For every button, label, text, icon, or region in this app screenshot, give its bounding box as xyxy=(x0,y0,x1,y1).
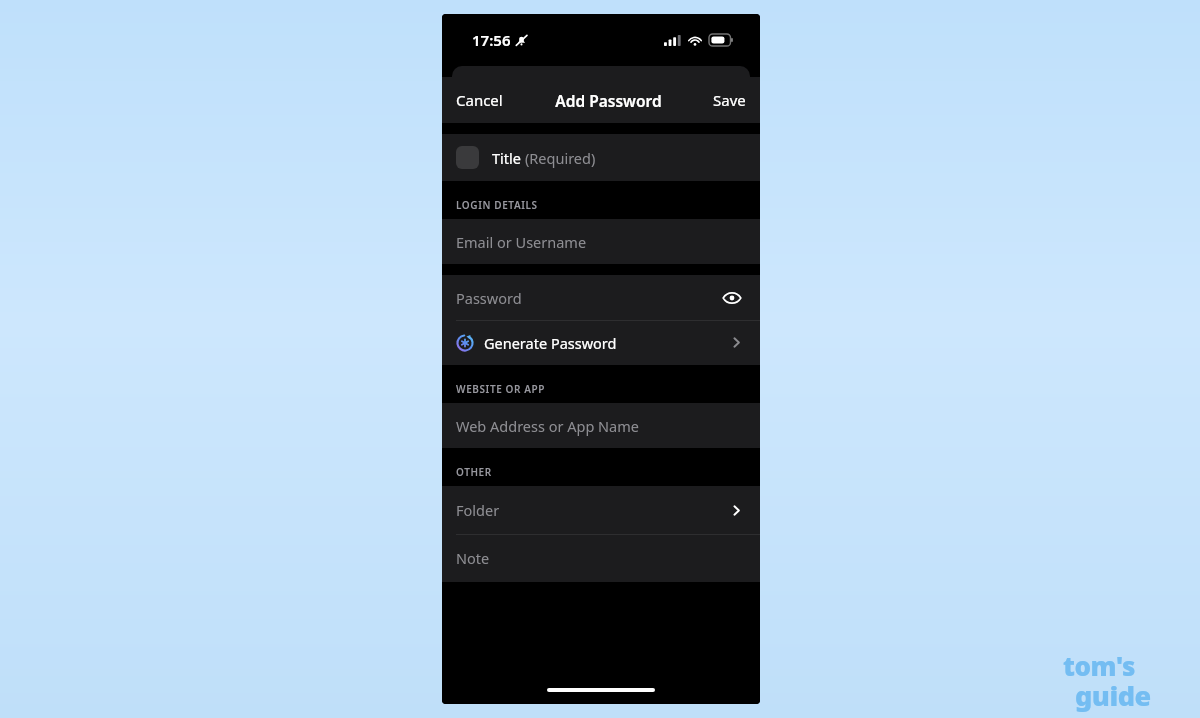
button[interactable]: Email or Username xyxy=(442,219,760,264)
button[interactable]: Note xyxy=(442,534,760,582)
staticText: tom's xyxy=(1063,648,1136,683)
button[interactable]: Save xyxy=(703,77,760,123)
button[interactable]: Folder xyxy=(442,486,760,534)
button[interactable]: Cancel xyxy=(442,77,513,123)
button[interactable]: Show password xyxy=(720,286,744,310)
staticText: Cancel xyxy=(456,90,503,110)
staticText: Password xyxy=(456,288,522,308)
staticText: LOGIN DETAILS xyxy=(456,198,538,212)
staticText: Folder xyxy=(456,500,500,520)
staticText: (Required) xyxy=(525,148,596,168)
staticText: 17:56 xyxy=(472,30,511,50)
button[interactable]: Generate Password xyxy=(442,320,760,365)
staticText: WEBSITE OR APP xyxy=(456,382,546,396)
staticText: Save xyxy=(713,90,746,110)
button[interactable]: Title xyxy=(442,134,760,181)
staticText: Title xyxy=(492,148,525,168)
staticText: OTHER xyxy=(456,465,492,479)
staticText: Web Address or App Name xyxy=(456,416,639,436)
staticText: Generate Password xyxy=(484,333,617,353)
staticText: Add Password xyxy=(555,90,662,111)
staticText: guide xyxy=(1075,677,1151,714)
button[interactable]: Web Address or App Name xyxy=(442,403,760,448)
staticText: Email or Username xyxy=(456,232,587,252)
button[interactable]: Password xyxy=(442,275,760,320)
staticText: Note xyxy=(456,548,490,568)
